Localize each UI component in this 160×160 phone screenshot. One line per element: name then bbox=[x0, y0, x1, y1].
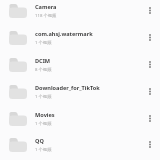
button[interactable]: More options bbox=[140, 51, 160, 78]
button[interactable]: More options bbox=[140, 0, 160, 24]
button[interactable]: More options bbox=[140, 24, 160, 51]
button[interactable]: More options bbox=[140, 78, 160, 105]
button[interactable]: Camera bbox=[0, 0, 160, 24]
staticText: 1 个视频 bbox=[35, 120, 52, 126]
staticText: DCIM bbox=[35, 57, 51, 65]
staticText: 1 个视频 bbox=[35, 93, 52, 99]
button[interactable]: com.ahsj.watermark bbox=[0, 24, 160, 51]
staticText: QQ bbox=[35, 137, 44, 145]
staticText: 118 个视频 bbox=[35, 12, 57, 18]
button[interactable]: QQ bbox=[0, 132, 160, 157]
staticText: Movies bbox=[35, 111, 55, 119]
staticText: Downloader_for_TikTok bbox=[35, 84, 100, 92]
staticText: 8 个视频 bbox=[35, 66, 52, 72]
button[interactable]: Downloader_for_TikTok bbox=[0, 78, 160, 105]
button[interactable]: More options bbox=[140, 132, 160, 157]
button[interactable]: More options bbox=[140, 105, 160, 132]
button[interactable]: DCIM bbox=[0, 51, 160, 78]
button[interactable]: Movies bbox=[0, 105, 160, 132]
staticText: Camera bbox=[35, 3, 57, 11]
staticText: 1 个视频 bbox=[35, 39, 52, 45]
staticText: com.ahsj.watermark bbox=[35, 30, 93, 38]
staticText: 1 个视频 bbox=[35, 146, 52, 152]
